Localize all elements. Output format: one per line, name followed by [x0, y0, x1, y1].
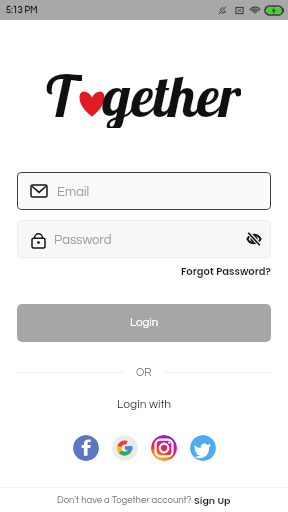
button[interactable]: Instagram: [151, 435, 177, 461]
staticText: Don't have a Together account?: [57, 495, 194, 505]
staticText: Login: [130, 317, 159, 329]
staticText: Sign Up: [194, 494, 231, 507]
button[interactable]: Facebook: [73, 435, 99, 461]
button[interactable]: Forgot Password?: [181, 264, 271, 278]
button[interactable]: Sign Up: [194, 494, 231, 507]
button[interactable]: Twitter: [190, 435, 216, 461]
staticText: Forgot Password?: [181, 264, 271, 278]
staticText: T: [43, 60, 82, 128]
staticText: Login with: [117, 398, 172, 410]
button[interactable]: Login: [17, 304, 271, 342]
staticText: Email: [57, 185, 90, 198]
button[interactable]: Email: [17, 172, 271, 210]
button[interactable]: Password: [17, 220, 271, 258]
staticText: OR: [136, 367, 152, 378]
staticText: Password: [54, 233, 112, 246]
staticText: gether: [102, 60, 241, 128]
button[interactable]: Show password: [239, 224, 269, 254]
staticText: 5:13 PM: [6, 6, 38, 15]
button[interactable]: Google: [112, 435, 138, 461]
